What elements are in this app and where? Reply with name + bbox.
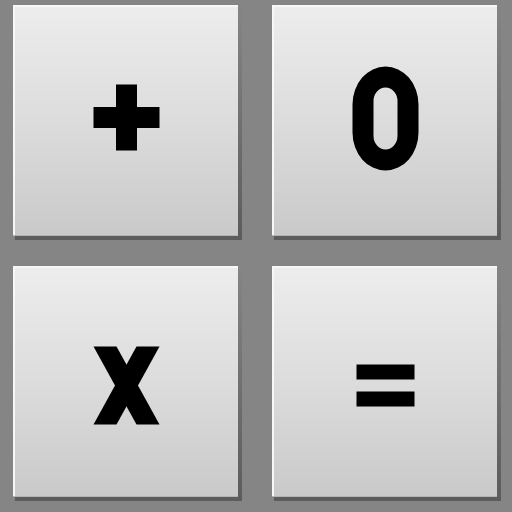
button[interactable]: Plus: [13, 5, 240, 238]
button[interactable]: Zero: [272, 5, 499, 238]
button[interactable]: Multiply: [13, 266, 240, 499]
button[interactable]: Equals: [272, 266, 499, 499]
